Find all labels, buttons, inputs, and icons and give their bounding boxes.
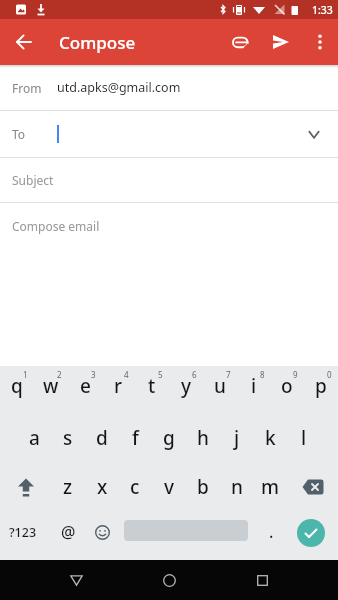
staticText: From [12,80,57,96]
button[interactable]: a [17,413,51,462]
button[interactable]: h [186,413,220,462]
staticText: w [43,373,59,399]
button[interactable]: From [0,65,338,110]
staticText: b [197,474,209,500]
button[interactable]: c [118,462,152,511]
button[interactable]: s [51,413,85,462]
staticText: g [163,425,175,451]
staticText: z [63,474,73,500]
button[interactable]: w [34,362,68,409]
button[interactable]: t [135,362,169,409]
staticText: Compose [59,31,136,54]
button[interactable]: . [254,508,288,556]
button[interactable]: Subject [0,158,338,202]
staticText: k [265,425,276,451]
button[interactable] [220,19,260,65]
button[interactable]: f [118,413,152,462]
button[interactable]: z [51,462,85,511]
button[interactable] [287,462,338,511]
button[interactable]: d [85,413,119,462]
staticText: 7 [226,369,231,380]
staticText: s [63,425,73,451]
button[interactable]: i [237,362,271,409]
staticText: n [231,474,243,500]
staticText: m [261,474,279,500]
staticText: 4 [124,369,129,380]
staticText: 2 [57,369,62,380]
staticText: a [29,425,40,451]
button[interactable]: n [220,462,254,511]
button[interactable]: k [253,413,287,462]
button[interactable]: j [220,413,254,462]
button[interactable]: ?123 [0,508,45,556]
staticText: x [97,474,108,500]
button[interactable]: r [101,362,135,409]
staticText: 1:33 [312,3,333,17]
button[interactable]: v [152,462,186,511]
staticText: h [197,425,209,451]
staticText: @ [61,521,76,543]
staticText: 1 [23,369,28,380]
button[interactable] [30,560,123,600]
button[interactable]: y [169,362,203,409]
staticText: c [130,474,140,500]
button[interactable]: p [304,362,338,409]
button[interactable] [0,19,48,65]
staticText: 9 [293,369,298,380]
button[interactable] [85,508,119,556]
button[interactable]: l [287,413,321,462]
staticText: v [164,474,175,500]
staticText: . [269,521,274,543]
button[interactable] [260,19,302,65]
staticText: ?123 [9,524,37,541]
staticText: 8 [260,369,265,380]
staticText: Compose email [12,218,100,234]
staticText: t [148,373,156,399]
button[interactable]: g [152,413,186,462]
button[interactable] [0,462,51,511]
button[interactable]: @ [51,508,85,556]
staticText: j [234,425,240,451]
staticText: y [181,373,192,399]
staticText: utd.apks@gmail.com [57,79,181,96]
staticText: i [251,373,257,399]
button[interactable] [216,560,309,600]
button[interactable]: q [0,362,34,409]
button[interactable]: Compose email [0,203,338,366]
staticText: 5 [158,369,163,380]
button[interactable]: e [68,362,102,409]
button[interactable]: b [186,462,220,511]
staticText: d [96,425,108,451]
staticText: f [132,425,139,451]
button[interactable]: o [270,362,304,409]
staticText: l [301,425,307,451]
staticText: Subject [12,172,54,188]
staticText: 3 [91,369,96,380]
button[interactable]: x [85,462,119,511]
staticText: q [11,373,23,399]
staticText: e [80,373,91,399]
staticText: o [281,373,293,399]
button[interactable]: u [203,362,237,409]
button[interactable]: m [253,462,287,511]
staticText: p [315,373,327,399]
staticText: 6 [192,369,197,380]
staticText: r [114,373,123,399]
staticText: u [214,373,226,399]
button[interactable] [302,19,338,65]
staticText: To [12,126,57,142]
button[interactable]: To [0,111,338,157]
staticText: 0 [327,369,332,380]
button[interactable] [123,560,216,600]
button[interactable] [297,519,325,547]
